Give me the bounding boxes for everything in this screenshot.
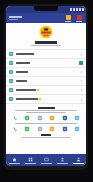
button[interactable]: Notifications [64,15,72,22]
button[interactable]: Facebook [62,126,68,132]
button[interactable] [6,68,86,76]
button[interactable]: Instagram [49,115,55,121]
button[interactable] [6,50,86,58]
button[interactable]: Categories [22,154,38,166]
button[interactable]: WhatsApp [24,126,30,132]
button[interactable]: Saved [54,154,70,166]
button[interactable]: Facebook [62,115,68,121]
button[interactable]: Twitter [37,115,43,121]
button[interactable]: SMS [12,115,18,121]
button[interactable]: Videos [75,15,83,22]
button[interactable]: Cards [38,154,54,166]
button[interactable]: More [74,115,80,121]
button[interactable] [6,86,86,94]
button[interactable] [6,95,86,103]
button[interactable]: WhatsApp [24,115,30,121]
button[interactable]: More [74,126,80,132]
button[interactable]: More [70,154,86,166]
button[interactable]: Instagram [49,126,55,132]
button[interactable] [6,77,86,85]
button[interactable]: SMS [12,126,18,132]
button[interactable]: Twitter [37,126,43,132]
button[interactable] [6,59,86,67]
button[interactable]: Home [6,154,22,166]
